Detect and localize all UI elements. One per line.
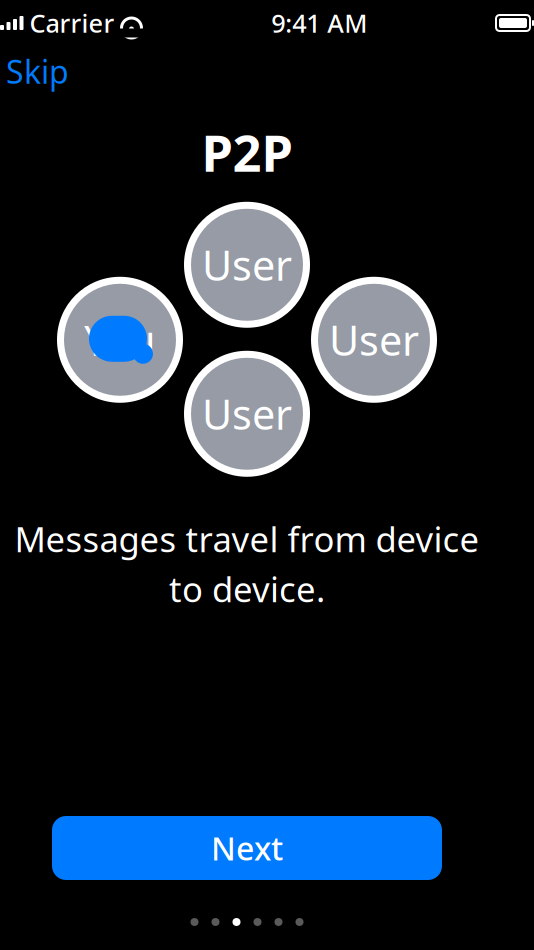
staticText: User	[202, 386, 292, 441]
staticText: You	[84, 312, 156, 367]
staticText: Messages travel from device	[14, 516, 479, 562]
staticText: User	[329, 312, 419, 367]
staticText: Carrier	[29, 6, 114, 40]
staticText: to device.	[169, 566, 325, 612]
button[interactable]: Next	[52, 816, 442, 880]
staticText: Next	[211, 827, 283, 869]
staticText: User	[202, 237, 292, 292]
button[interactable]: Skip	[0, 42, 95, 100]
staticText: Skip	[6, 50, 69, 92]
staticText: P2P	[201, 118, 292, 186]
staticText: 9:41 AM	[271, 6, 367, 40]
